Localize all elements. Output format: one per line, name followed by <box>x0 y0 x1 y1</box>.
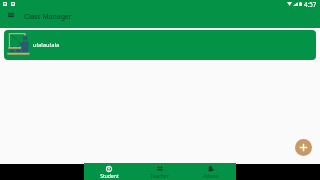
staticText: Class Manager <box>24 12 72 21</box>
button[interactable]: Admin <box>185 163 236 180</box>
button[interactable]: Student <box>84 163 134 180</box>
button[interactable]: Teacher <box>134 163 185 180</box>
staticText: Teacher <box>150 173 169 180</box>
button[interactable]: ulalaulala <box>4 30 316 60</box>
staticText: ulalaulala <box>33 41 60 49</box>
button[interactable]: Add class <box>295 139 312 156</box>
button[interactable]: Open navigation menu <box>4 8 18 22</box>
staticText: Student <box>100 173 119 180</box>
staticText: 4:57 <box>304 0 317 8</box>
staticText: Admin <box>203 173 219 180</box>
